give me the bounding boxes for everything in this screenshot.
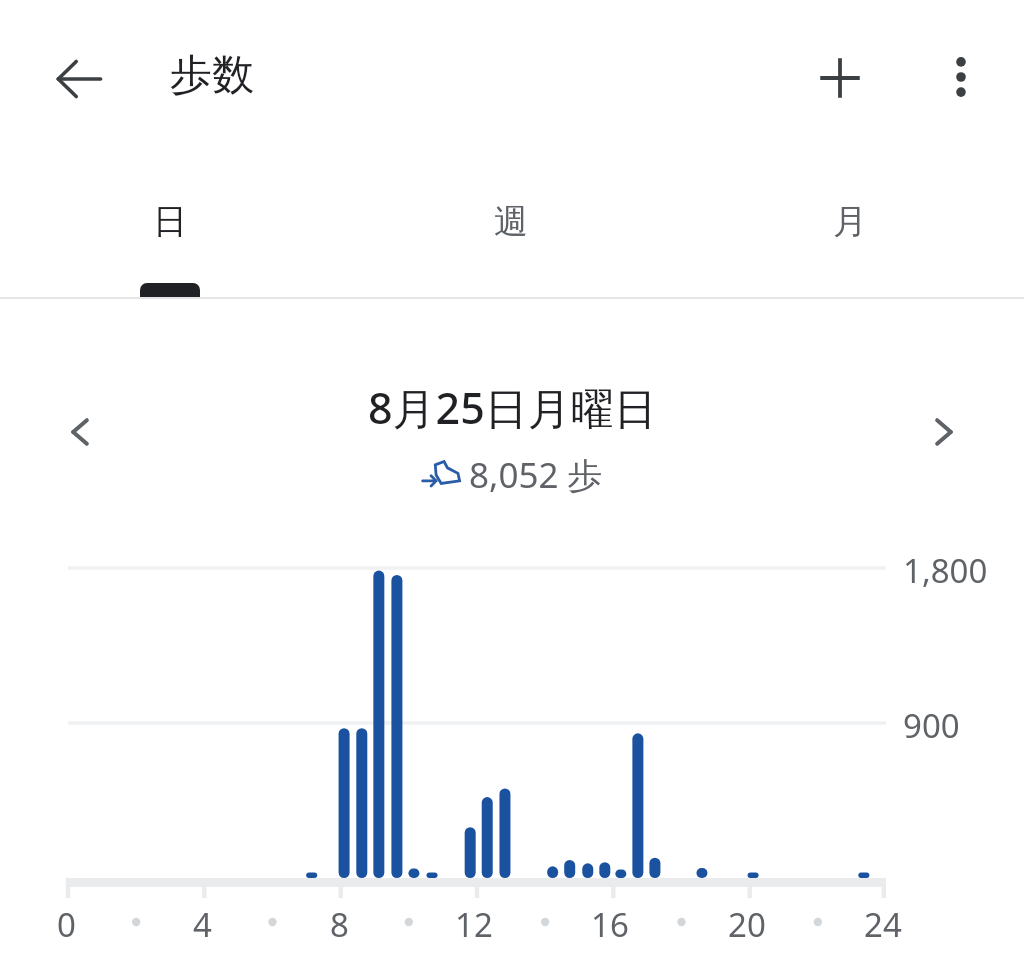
staticText: 8 <box>330 902 349 947</box>
button[interactable]: Previous day <box>48 400 112 464</box>
staticText: 8,052 歩 <box>469 451 603 499</box>
staticText: 20 <box>728 902 766 947</box>
staticText: 4 <box>193 902 212 947</box>
staticText: 12 <box>455 902 493 947</box>
button[interactable]: More options <box>930 46 992 108</box>
staticText: 月 <box>833 200 867 243</box>
staticText: 8月25日月曜日 <box>368 378 657 437</box>
button[interactable]: 日 <box>85 160 255 297</box>
button[interactable]: 週 <box>426 160 596 297</box>
button[interactable]: Add <box>808 46 872 110</box>
button[interactable]: Back <box>48 48 110 110</box>
staticText: 24 <box>864 902 902 947</box>
staticText: 0 <box>57 902 76 947</box>
staticText: 900 <box>903 703 960 748</box>
staticText: 1,800 <box>903 548 988 593</box>
button[interactable]: 月 <box>765 160 935 297</box>
staticText: 週 <box>494 200 528 243</box>
staticText: 日 <box>153 200 187 243</box>
staticText: 16 <box>591 902 629 947</box>
staticText: 歩数 <box>170 49 254 102</box>
button[interactable]: Next day <box>912 400 976 464</box>
